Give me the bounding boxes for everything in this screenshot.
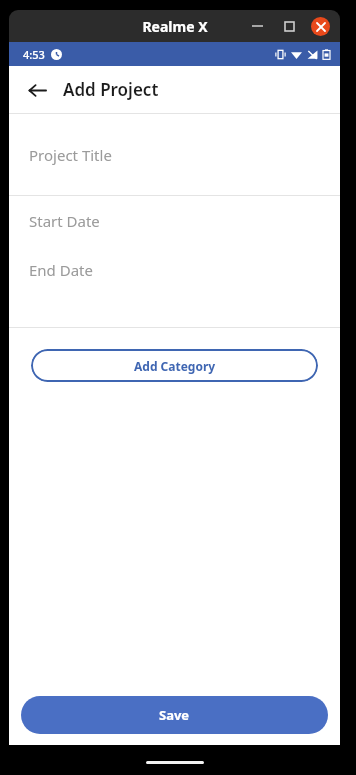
staticText: Save (159, 706, 190, 724)
staticText: Realme X (142, 17, 208, 36)
staticText: Add Project (63, 78, 159, 101)
button[interactable]: Save (21, 696, 328, 734)
button[interactable]: Back (19, 72, 55, 108)
staticText: 4:53 (23, 47, 45, 62)
button[interactable]: Start Date (9, 196, 340, 245)
staticText: Start Date (29, 211, 100, 231)
staticText: Project Title (29, 145, 112, 165)
button[interactable]: Add Category (31, 349, 318, 382)
button[interactable]: Project Title (9, 114, 340, 195)
staticText: End Date (29, 260, 93, 280)
button[interactable]: Maximize (279, 16, 299, 36)
button[interactable]: Close (311, 17, 330, 36)
button[interactable]: End Date (9, 245, 340, 294)
button[interactable]: Minimize (247, 16, 267, 36)
staticText: Add Category (134, 358, 216, 374)
